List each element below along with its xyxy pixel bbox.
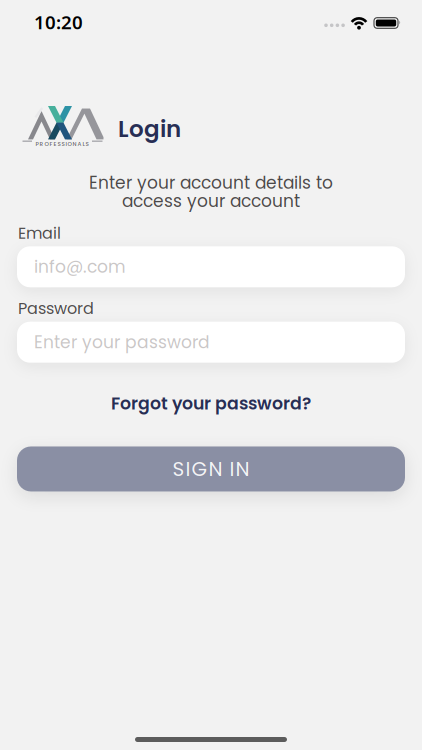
staticText: Password [18,297,94,320]
staticText: info@.com [34,255,126,279]
staticText: Login [118,113,181,145]
staticText: P R O F E S S I O N A L S [35,140,88,148]
button[interactable]: SIGN IN [0,446,422,491]
button[interactable]: Password [0,322,422,363]
staticText: SIGN IN [172,455,249,483]
staticText: Enter your account details to [89,171,333,195]
button[interactable]: Email [0,246,422,287]
staticText: access your account [122,189,300,213]
staticText: Forgot your password? [111,391,311,415]
button[interactable]: Forgot your password? [111,391,311,415]
staticText: Email [18,222,61,244]
staticText: Enter your password [34,330,210,354]
staticText: 10:20 [34,10,83,34]
